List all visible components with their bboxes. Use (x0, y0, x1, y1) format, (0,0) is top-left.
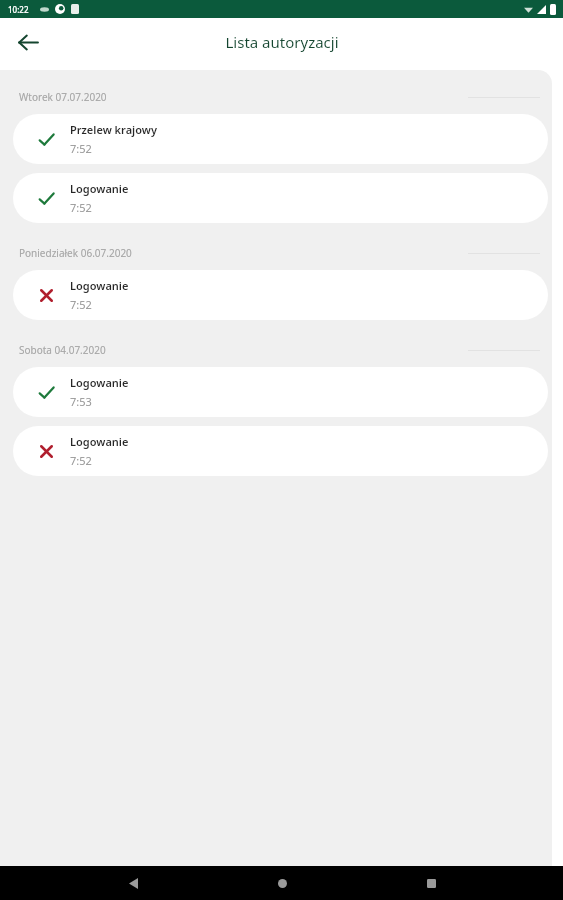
staticText: Logowanie (70, 434, 129, 449)
staticText: 7:52 (70, 200, 92, 215)
button[interactable]: Authorized (13, 114, 548, 164)
other: Authorized (38, 131, 55, 148)
button[interactable]: Authorized (13, 173, 548, 223)
staticText: 7:52 (70, 453, 92, 468)
staticText: Logowanie (70, 181, 129, 196)
staticText: Przelew krajowy (70, 122, 157, 137)
staticText: Sobota 04.07.2020 (19, 343, 106, 357)
staticText: 10:22 (8, 4, 29, 15)
other: Rejected (39, 288, 54, 303)
staticText: 7:52 (70, 297, 92, 312)
button[interactable]: Back (116, 866, 150, 900)
staticText: Logowanie (70, 375, 129, 390)
staticText: 7:52 (70, 141, 92, 156)
staticText: Logowanie (70, 278, 129, 293)
staticText: Poniedziałek 06.07.2020 (19, 246, 132, 260)
other: Rejected (39, 444, 54, 459)
button[interactable]: Rejected (13, 426, 548, 476)
staticText: Wtorek 07.07.2020 (19, 90, 107, 104)
button[interactable]: Rejected (13, 270, 548, 320)
other: Authorized (38, 384, 55, 401)
other: Authorized (38, 190, 55, 207)
button[interactable]: Back (8, 22, 48, 62)
button[interactable]: Home (265, 866, 299, 900)
staticText: 7:53 (70, 394, 92, 409)
button[interactable]: Authorized (13, 367, 548, 417)
staticText: Lista autoryzacji (225, 32, 339, 52)
button[interactable]: Recent apps (414, 866, 448, 900)
